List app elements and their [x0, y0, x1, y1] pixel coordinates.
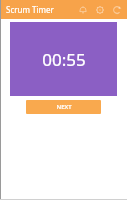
staticText: NEXT [56, 103, 72, 111]
staticText: Scrum Timer [6, 4, 54, 15]
staticText: 00:55 [42, 48, 86, 71]
button[interactable]: 00:55 [10, 22, 117, 96]
button[interactable]: NEXT [26, 100, 101, 114]
button[interactable]: Timer settings [92, 2, 107, 17]
button[interactable]: Notifications [75, 2, 90, 17]
button[interactable]: Reset [109, 2, 124, 17]
